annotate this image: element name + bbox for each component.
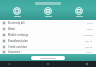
staticText: 09:05 — [87, 28, 93, 31]
button[interactable]: Recents — [84, 61, 90, 67]
staticText: Feb 27 — [86, 51, 93, 54]
staticText: Electricity bill — [8, 21, 25, 25]
button[interactable]: Transfer — [43, 6, 53, 18]
button[interactable]: Credit card due — [0, 44, 96, 50]
button[interactable]: Scan — [12, 6, 22, 18]
staticText: Mar 12 — [85, 40, 93, 43]
button[interactable]: Mobile recharge — [0, 32, 96, 38]
button[interactable]: Back — [6, 61, 12, 67]
button[interactable] — [31, 56, 65, 60]
staticText: Water — [8, 27, 16, 31]
button[interactable]: Electricity bill — [0, 20, 96, 26]
button[interactable]: Home — [45, 61, 51, 67]
button[interactable]: Insurance — [0, 50, 96, 54]
staticText: Insurance — [8, 50, 21, 54]
staticText: Credit card due — [8, 45, 27, 49]
button[interactable]: Water — [0, 26, 96, 32]
staticText: Broadband plan — [8, 39, 28, 43]
button[interactable]: Pay — [74, 6, 84, 18]
button[interactable]: Search — [35, 2, 61, 5]
staticText: Yesterday — [83, 34, 93, 37]
staticText: Mobile recharge — [8, 33, 29, 37]
staticText: 12:40 — [87, 22, 93, 25]
staticText: Mar 08 — [85, 46, 93, 49]
button[interactable]: Broadband plan — [0, 38, 96, 44]
